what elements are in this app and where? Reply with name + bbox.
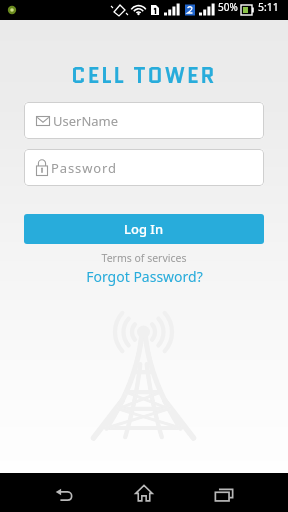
button[interactable]: Home bbox=[104, 473, 184, 512]
button[interactable]: Recents bbox=[184, 473, 264, 512]
staticText: Log In bbox=[124, 220, 164, 238]
staticText: Terms of services bbox=[0, 251, 288, 265]
button[interactable]: Password bbox=[24, 149, 264, 186]
button[interactable]: UserName bbox=[24, 102, 264, 139]
staticText: CELL TOWER bbox=[0, 61, 288, 91]
button[interactable]: Forgot Password? bbox=[80, 265, 209, 288]
staticText: 50% bbox=[218, 0, 238, 14]
staticText: 5:11 bbox=[258, 0, 279, 14]
staticText: Password bbox=[51, 159, 117, 177]
button[interactable]: Back bbox=[24, 473, 104, 512]
staticText: UserName bbox=[53, 112, 119, 130]
button[interactable]: Log In bbox=[24, 214, 264, 244]
